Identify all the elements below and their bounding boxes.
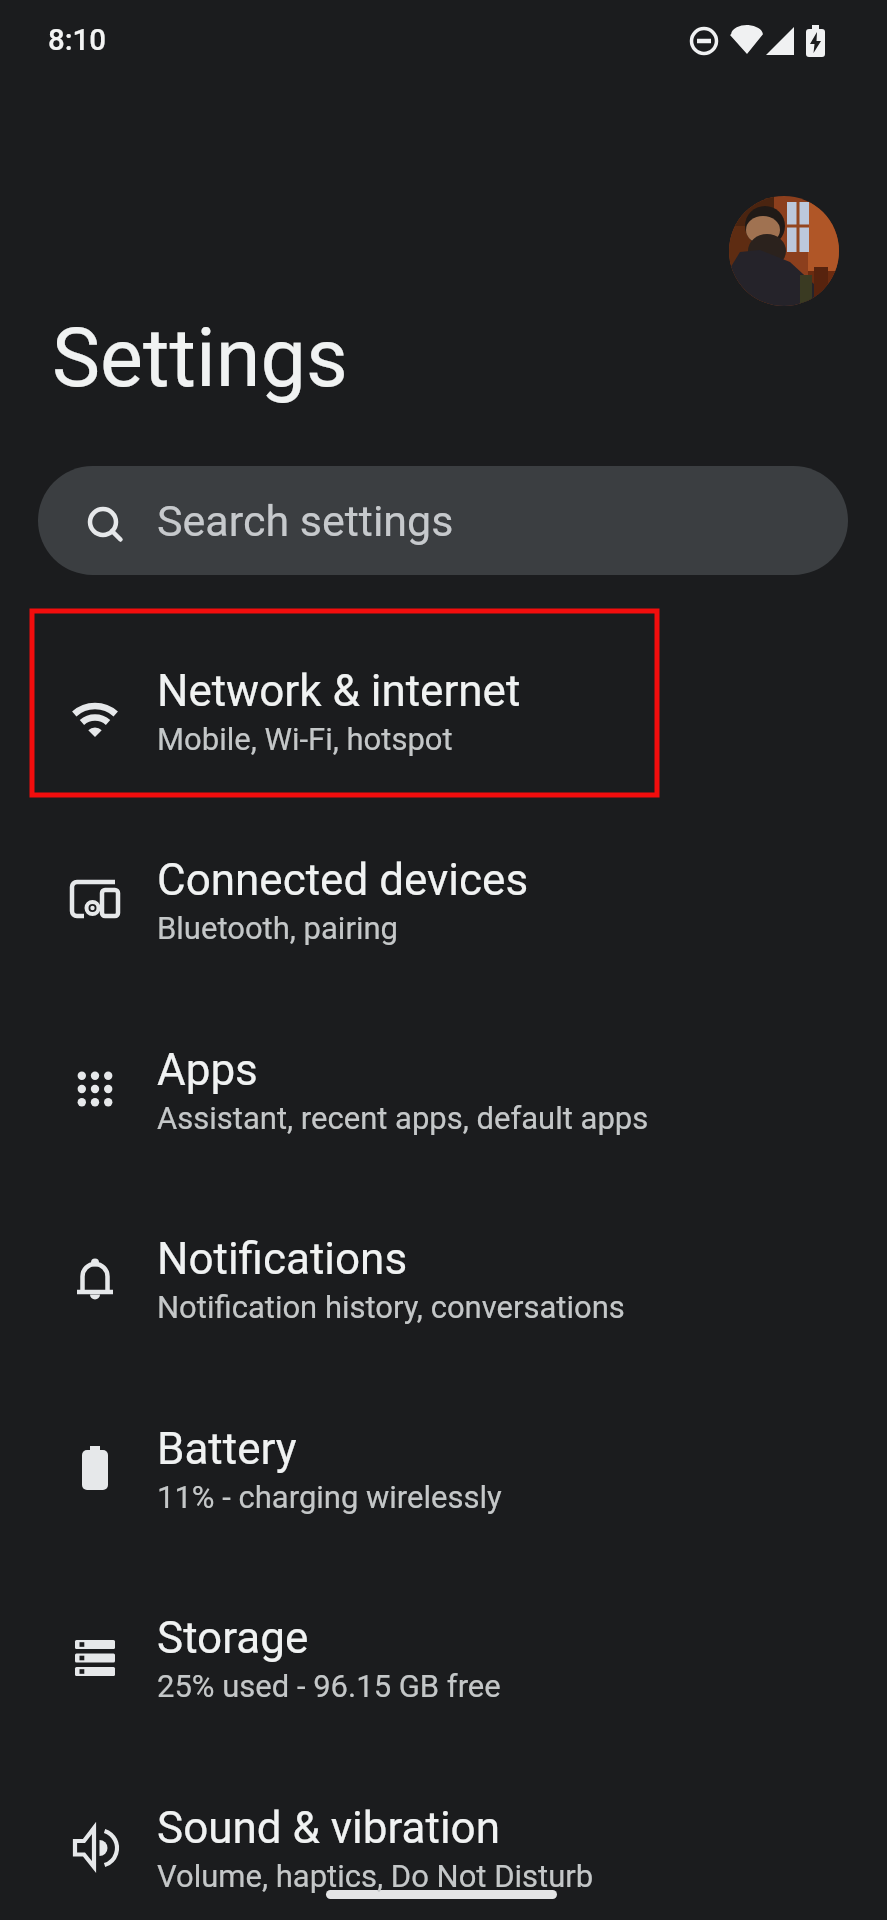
- staticText: Bluetooth, pairing: [157, 910, 398, 946]
- staticText: Apps: [157, 1044, 258, 1096]
- button[interactable]: Storage: [0, 1563, 887, 1753]
- staticText: Notifications: [157, 1233, 408, 1285]
- staticText: 11% - charging wirelessly: [157, 1479, 502, 1515]
- button[interactable]: Notifications: [0, 1184, 887, 1374]
- button[interactable]: Connected devices: [0, 805, 887, 995]
- staticText: Volume, haptics, Do Not Disturb: [157, 1858, 594, 1894]
- button[interactable]: Apps: [0, 995, 887, 1185]
- staticText: Network & internet: [157, 665, 521, 717]
- staticText: Assistant, recent apps, default apps: [157, 1100, 649, 1136]
- button[interactable]: Battery: [0, 1374, 887, 1564]
- staticText: Battery: [157, 1423, 297, 1475]
- staticText: Storage: [157, 1612, 309, 1664]
- button[interactable]: Network & internet: [0, 616, 887, 806]
- button[interactable]: Sound & vibration: [0, 1753, 887, 1920]
- staticText: Connected devices: [157, 854, 529, 906]
- staticText: Search settings: [157, 496, 454, 546]
- staticText: 8:10: [48, 23, 107, 58]
- staticText: Mobile, Wi-Fi, hotspot: [157, 721, 453, 757]
- staticText: Notification history, conversations: [157, 1289, 625, 1325]
- staticText: Sound & vibration: [157, 1802, 500, 1854]
- staticText: 25% used - 96.15 GB free: [157, 1668, 501, 1704]
- button[interactable]: Search settings: [38, 466, 848, 575]
- staticText: Settings: [52, 311, 348, 406]
